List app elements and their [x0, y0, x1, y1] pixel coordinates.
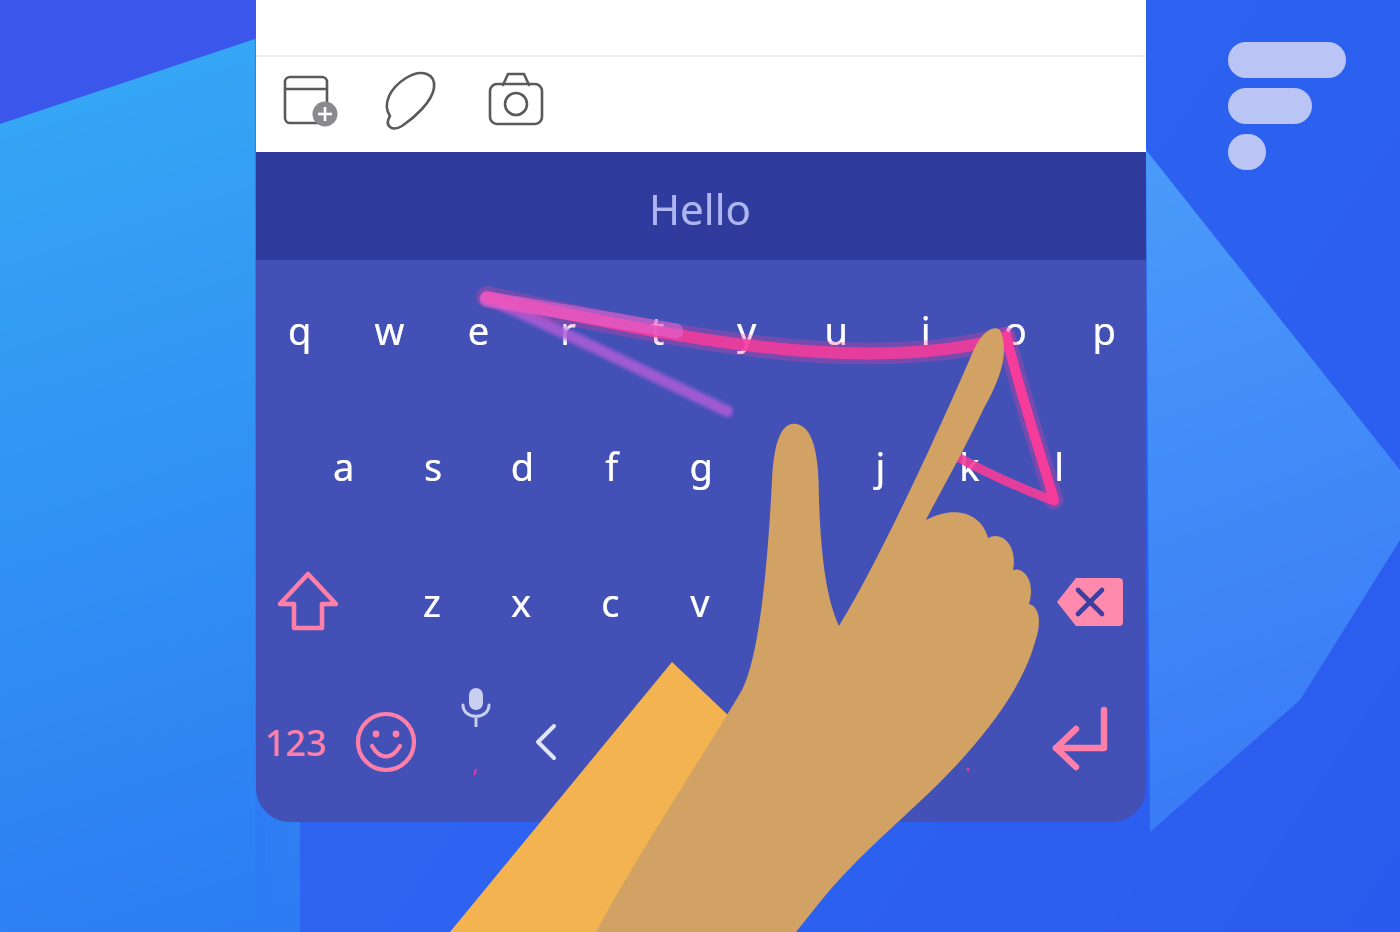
button[interactable]: Swipe keyboard [0, 0, 1400, 932]
